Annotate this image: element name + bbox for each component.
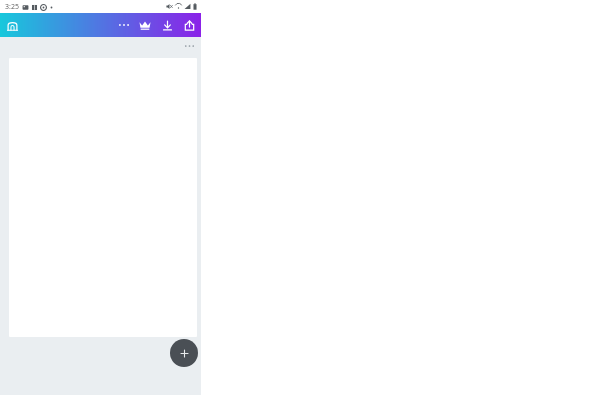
button[interactable]: More options [114, 15, 134, 35]
button[interactable]: Premium [135, 15, 155, 35]
staticText: 3:25 [5, 2, 19, 12]
button[interactable]: Home [3, 16, 21, 34]
button[interactable]: Page options [181, 40, 197, 52]
button[interactable]: Download [157, 15, 177, 35]
button[interactable]: Share [179, 15, 199, 35]
button[interactable]: Add [170, 339, 198, 367]
